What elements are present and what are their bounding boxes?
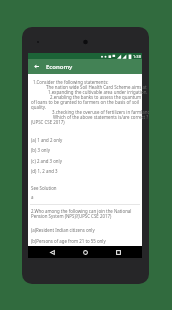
staticText: Which of the above statements is/are cor…: [53, 114, 149, 120]
staticText: a: [31, 194, 34, 200]
staticText: 3.checking the overuse of fertilizers in…: [52, 109, 149, 115]
staticText: 1.expanding the cultivable area under ir…: [48, 89, 148, 95]
button[interactable]: (b)Persons of age from 21 to 55 only: [28, 236, 142, 245]
staticText: 2.enabling the banks to assess the quant…: [50, 94, 142, 100]
button[interactable]: (a) 1 and 2 only: [28, 135, 142, 144]
staticText: quality.: [31, 104, 46, 110]
button[interactable]: Back: [30, 60, 43, 73]
button[interactable]: (a)Resident Indian citizens only: [28, 225, 142, 234]
button[interactable]: (b) 3 only: [28, 145, 142, 154]
staticText: (a) 1 and 2 only: [31, 137, 63, 143]
staticText: (a)Resident Indian citizens only: [31, 227, 95, 233]
button[interactable]: Recent apps: [112, 246, 124, 258]
staticText: The nation wide Soil Health Card Scheme …: [46, 84, 147, 90]
button[interactable]: (c) 2 and 3 only: [28, 156, 142, 165]
button[interactable]: Back: [46, 246, 58, 258]
staticText: Pension System (NPS)?(UPSC CSE 2017): [31, 213, 112, 219]
staticText: (UPSC CSE 2017): [31, 119, 65, 125]
staticText: See Solution: [31, 185, 57, 191]
button[interactable]: (d) 1, 2 and 3: [28, 166, 142, 175]
staticText: (b) 3 only: [31, 147, 50, 153]
staticText: Economy: [46, 63, 73, 71]
staticText: (c) 2 and 3 only: [31, 158, 62, 164]
staticText: 1.Consider the following statements:: [33, 79, 109, 85]
staticText: 2.Who among the following can join the N…: [31, 208, 132, 214]
staticText: (d) 1, 2 and 3: [31, 168, 58, 174]
staticText: of loans to be granted to farmers on the…: [31, 99, 139, 105]
button[interactable]: Home: [79, 246, 91, 258]
staticText: 1:38: [133, 54, 141, 59]
staticText: (b)Persons of age from 21 to 55 only: [31, 238, 106, 244]
